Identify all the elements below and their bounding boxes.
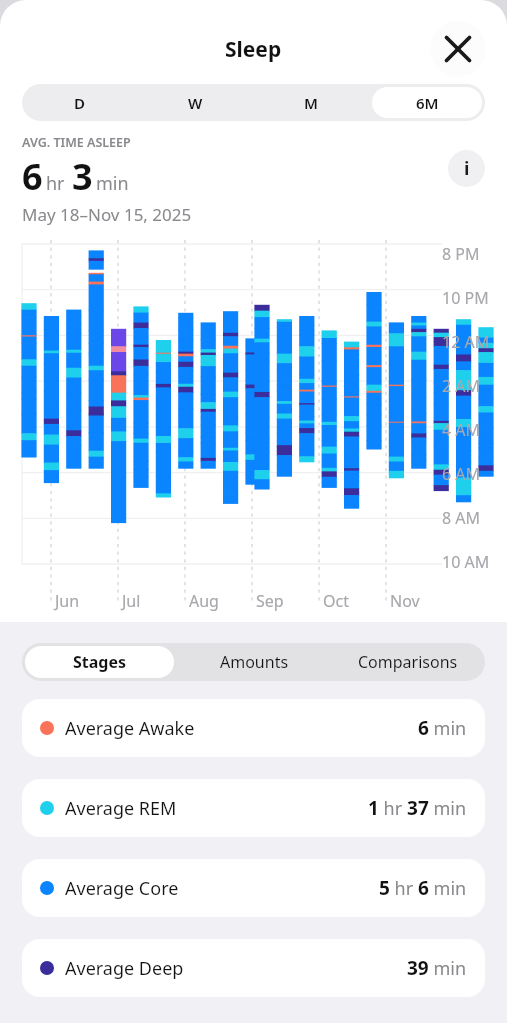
staticText: 12 AM xyxy=(442,331,490,353)
button[interactable]: M xyxy=(256,87,366,118)
staticText: 6 min xyxy=(418,715,467,741)
staticText: min xyxy=(96,171,129,196)
staticText: May 18–Nov 15, 2025 xyxy=(22,203,192,226)
staticText: hr xyxy=(46,171,65,196)
staticText: 2 AM xyxy=(442,375,481,397)
staticText: Sep xyxy=(256,590,284,612)
staticText: 6M xyxy=(416,93,439,113)
staticText: 1 hr 37 min xyxy=(368,795,467,821)
staticText: Sleep xyxy=(225,35,282,64)
staticText: 6 xyxy=(22,152,43,201)
button[interactable]: Close xyxy=(430,21,486,77)
staticText: Average Core xyxy=(65,876,179,901)
button[interactable]: Stages xyxy=(25,646,174,678)
button[interactable]: Average Deep xyxy=(22,939,485,997)
staticText: 39 min xyxy=(407,955,467,981)
button[interactable]: Info xyxy=(448,150,485,187)
staticText: 8 AM xyxy=(442,507,481,529)
button[interactable]: W xyxy=(140,87,250,118)
button[interactable]: Average Awake xyxy=(22,699,485,757)
staticText: 8 PM xyxy=(442,243,480,265)
staticText: Average Awake xyxy=(65,716,195,741)
staticText: 4 AM xyxy=(442,419,481,441)
button[interactable]: D xyxy=(25,87,134,118)
staticText: Average REM xyxy=(65,796,177,821)
staticText: Oct xyxy=(323,590,349,612)
staticText: 10 PM xyxy=(442,287,489,309)
button[interactable]: Amounts xyxy=(180,646,328,678)
button[interactable]: Average REM xyxy=(22,779,485,837)
button[interactable]: Comparisons xyxy=(334,646,482,678)
staticText: Stages xyxy=(73,651,127,673)
staticText: 5 hr 6 min xyxy=(379,875,467,901)
staticText: Average Deep xyxy=(65,956,184,981)
staticText: Jun xyxy=(55,590,80,612)
staticText: Jul xyxy=(122,590,141,612)
button[interactable]: 6M xyxy=(372,87,482,118)
staticText: i xyxy=(464,156,470,181)
staticText: Amounts xyxy=(220,651,289,673)
staticText: 6 AM xyxy=(442,463,481,485)
staticText: 3 xyxy=(72,152,93,201)
staticText: 10 AM xyxy=(442,551,490,573)
staticText: D xyxy=(74,93,85,113)
staticText: W xyxy=(188,93,203,113)
staticText: Aug xyxy=(189,590,219,612)
staticText: Nov xyxy=(390,590,420,612)
button[interactable]: Average Core xyxy=(22,859,485,917)
staticText: Comparisons xyxy=(358,651,458,673)
staticText: M xyxy=(304,93,318,113)
staticText: AVG. TIME ASLEEP xyxy=(22,134,131,151)
